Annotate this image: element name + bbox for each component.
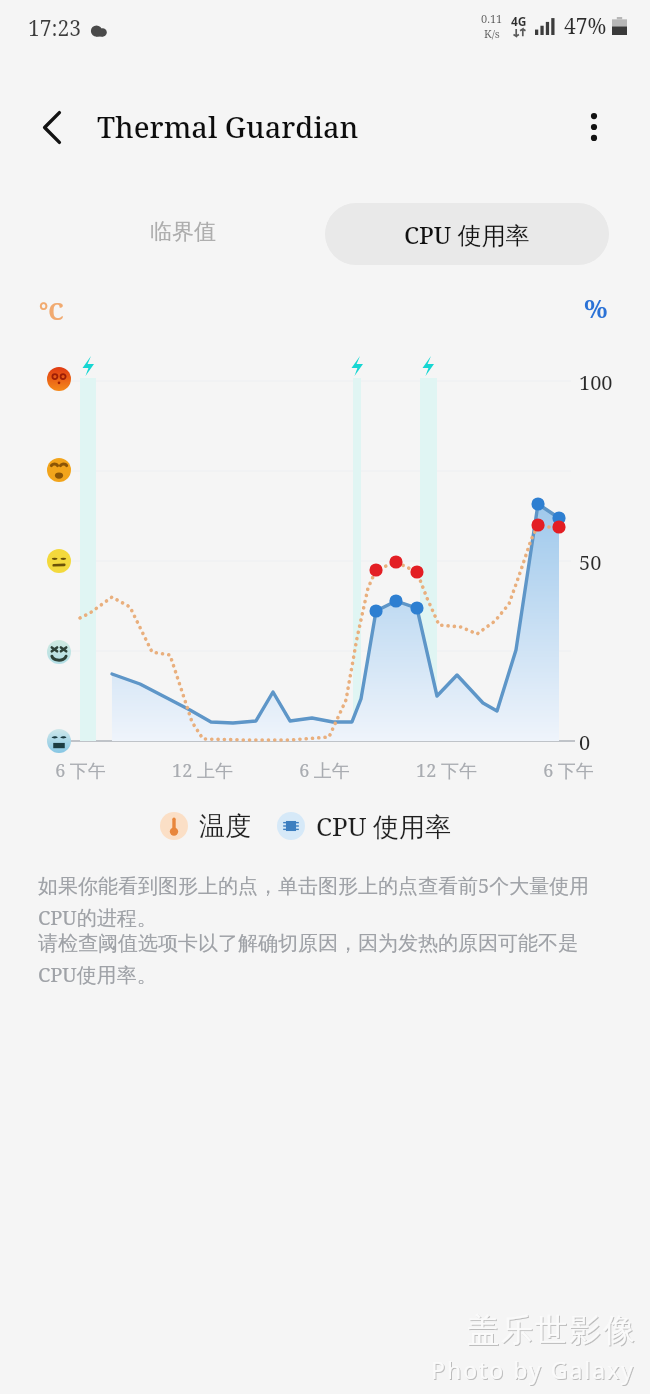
staticText: 0 <box>579 729 591 756</box>
staticText: 盖乐世影像 <box>467 1311 637 1351</box>
staticText: °C <box>39 295 64 326</box>
staticText: 如果你能看到图形上的点，单击图形上的点查看前5个大量使用CPU的进程。 <box>38 872 616 931</box>
staticText: 47% <box>564 12 607 41</box>
button[interactable]: More options <box>570 103 618 151</box>
staticText: 50 <box>579 549 602 576</box>
staticText: 6 上午 <box>299 758 350 783</box>
staticText: 请检查阈值选项卡以了解确切原因，因为发热的原因可能不是CPU使用率。 <box>38 931 616 988</box>
staticText: 100 <box>579 369 613 396</box>
staticText: Photo by Galaxy <box>431 1354 636 1385</box>
staticText: % <box>584 290 608 325</box>
staticText: 4G <box>511 13 527 29</box>
staticText: 17:23 <box>28 14 81 43</box>
staticText: 温度 <box>199 810 251 843</box>
button[interactable]: 临界值 <box>136 208 230 256</box>
button[interactable]: Back <box>28 103 76 151</box>
staticText: 6 下午 <box>55 758 106 783</box>
staticText: CPU 使用率 <box>316 808 452 844</box>
staticText: K/s <box>484 26 500 41</box>
staticText: 临界值 <box>150 218 216 246</box>
staticText: 0.11 <box>481 11 503 26</box>
staticText: 6 下午 <box>543 758 594 783</box>
staticText: Photo by Galaxy <box>432 1355 637 1386</box>
staticText: 12 下午 <box>416 758 477 783</box>
staticText: CPU 使用率 <box>404 218 530 251</box>
button[interactable]: CPU usage and temperature chart <box>66 370 578 752</box>
staticText: Thermal Guardian <box>97 107 359 146</box>
staticText: 盖乐世影像 <box>466 1310 636 1350</box>
staticText: 12 上午 <box>172 758 233 783</box>
button[interactable]: CPU 使用率 <box>325 203 609 265</box>
